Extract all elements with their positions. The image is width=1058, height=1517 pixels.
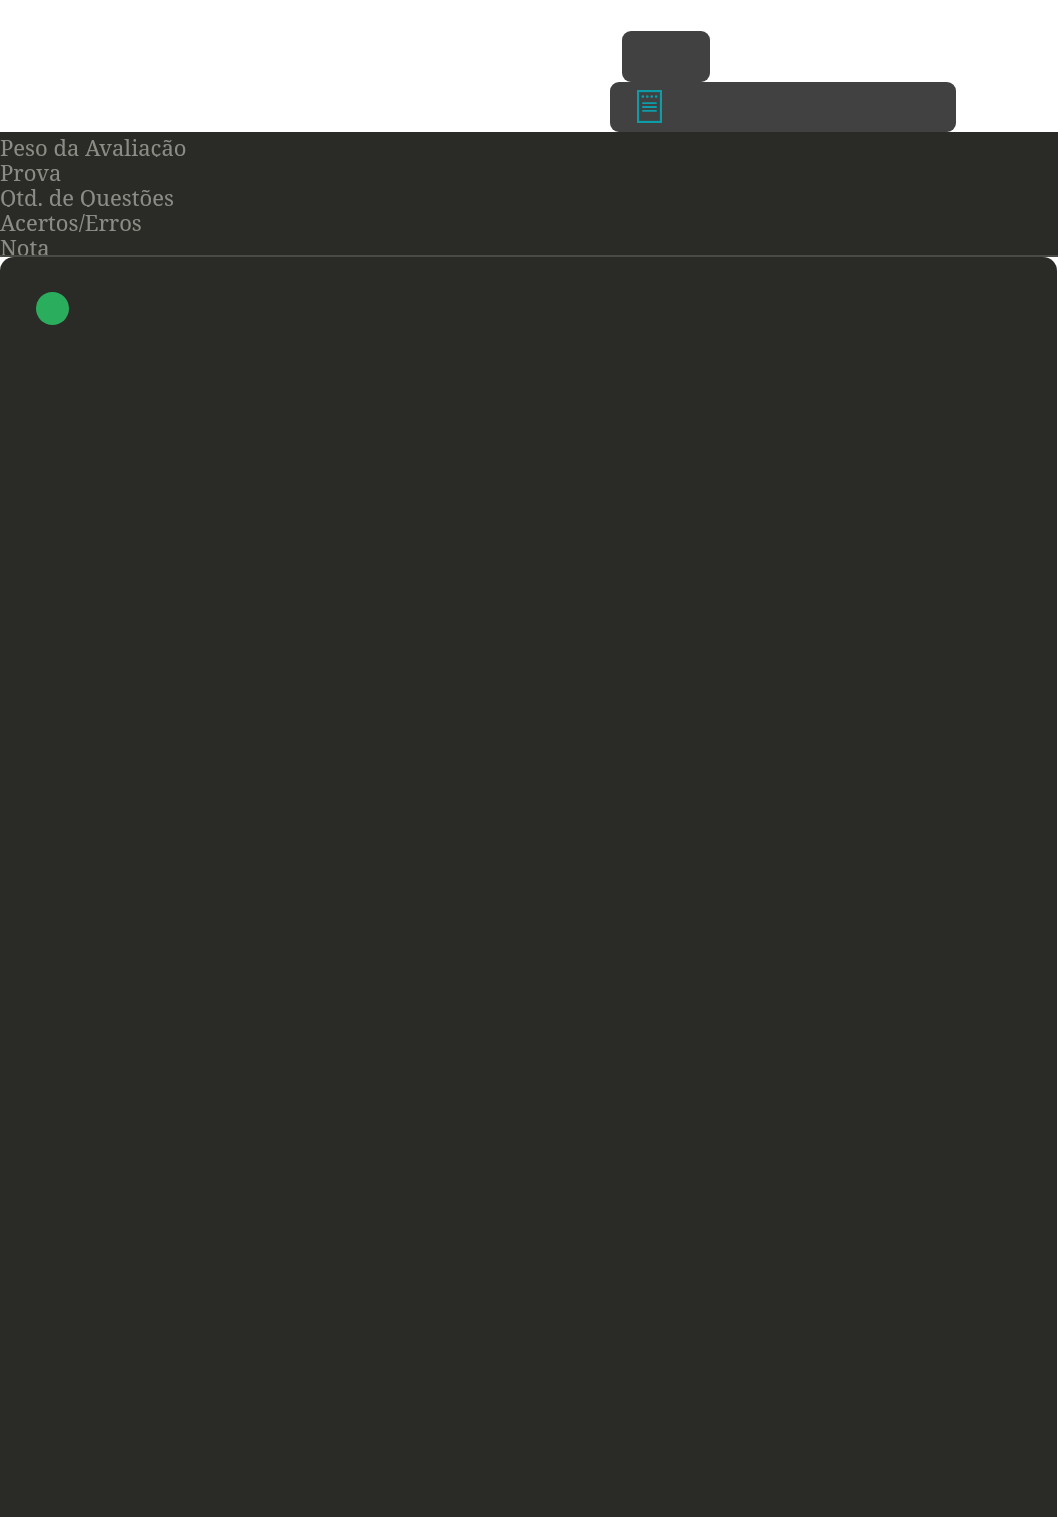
button[interactable]: Peso da Avaliação [0,132,400,157]
staticText: Peso da Avaliação [0,132,187,157]
staticText: Prova [0,157,62,182]
button[interactable]: Nota [0,232,400,256]
button[interactable]: Menu [622,31,710,82]
button[interactable]: Qtd. de Questões [0,182,400,207]
button[interactable]: Status [36,292,69,325]
staticText: Acertos/Erros [0,207,142,232]
button[interactable]: Notas [610,82,956,132]
staticText: Qtd. de Questões [0,182,174,207]
button[interactable]: Acertos/Erros [0,207,400,232]
button[interactable]: Prova [0,157,400,182]
staticText: Nota [0,232,50,256]
